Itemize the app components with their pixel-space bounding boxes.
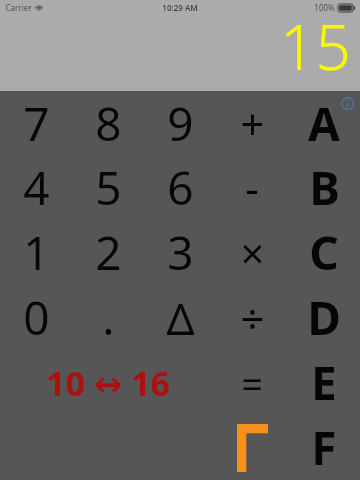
staticText: E [311, 351, 337, 414]
staticText: B [309, 156, 340, 219]
staticText: Carrier [5, 2, 32, 13]
button[interactable]: A [288, 91, 360, 155]
button[interactable]: Δ [144, 285, 216, 350]
button[interactable]: D [288, 285, 360, 350]
staticText: 10 ↔ 16 [46, 360, 170, 406]
staticText: ÷ [240, 289, 265, 346]
staticText: 6 [167, 156, 194, 219]
button[interactable]: Gamma function [216, 415, 288, 480]
button[interactable]: 1 [0, 220, 72, 285]
staticText: 0 [23, 286, 50, 349]
staticText: 5 [95, 156, 122, 219]
staticText: 9 [167, 92, 194, 155]
button[interactable]: × [216, 220, 288, 285]
button[interactable]: = [216, 350, 288, 415]
button[interactable]: E [288, 350, 360, 415]
button[interactable]: C [288, 220, 360, 285]
button[interactable]: 2 [72, 220, 144, 285]
staticText: Δ [166, 288, 195, 348]
staticText: 7 [23, 92, 50, 155]
button[interactable]: . [72, 285, 144, 350]
staticText: C [309, 221, 339, 284]
button[interactable]: ÷ [216, 285, 288, 350]
button[interactable]: F [288, 415, 360, 480]
button[interactable]: 3 [144, 220, 216, 285]
staticText: D [307, 286, 341, 349]
staticText: 8 [95, 92, 122, 155]
staticText: 3 [167, 221, 194, 284]
button[interactable]: Info [337, 93, 357, 113]
button[interactable]: - [216, 155, 288, 220]
staticText: 4 [23, 156, 50, 219]
button[interactable]: B [288, 155, 360, 220]
button[interactable]: 6 [144, 155, 216, 220]
staticText: 100% [314, 2, 335, 13]
button[interactable]: 7 [0, 91, 72, 155]
staticText: 1 [23, 221, 50, 284]
staticText: . [102, 286, 115, 349]
button[interactable]: 5 [72, 155, 144, 220]
staticText: - [245, 159, 259, 216]
button[interactable]: 4 [0, 155, 72, 220]
button[interactable]: 0 [0, 285, 72, 350]
staticText: F [311, 416, 337, 479]
staticText: + [240, 95, 265, 152]
button[interactable]: 9 [144, 91, 216, 155]
button[interactable]: 8 [72, 91, 144, 155]
staticText: × [240, 224, 265, 281]
button[interactable]: 10 ↔ 16 [0, 350, 216, 415]
staticText: 10:29 AM [162, 2, 198, 13]
staticText: 15 [280, 4, 351, 88]
staticText: 2 [95, 221, 122, 284]
button[interactable]: + [216, 91, 288, 155]
staticText: A [308, 92, 340, 155]
staticText: = [241, 357, 263, 409]
